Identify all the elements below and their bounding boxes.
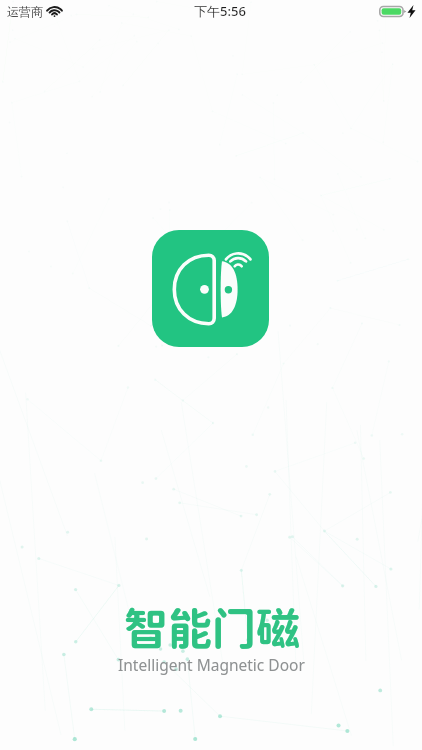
button[interactable]: Intelligent Magnetic Door app icon [152, 230, 269, 347]
staticText: 下午5:56 [194, 2, 246, 20]
staticText: 运营商 [7, 4, 43, 19]
staticText: 智能门磁 [124, 602, 300, 654]
staticText: Intelligent Magnetic Door [118, 654, 305, 675]
